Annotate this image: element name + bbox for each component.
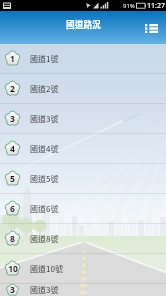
staticText: 5	[10, 173, 15, 185]
staticText: 國道3號	[30, 113, 59, 125]
staticText: 國道8號	[30, 233, 59, 245]
button[interactable]: 8	[0, 224, 166, 253]
button[interactable]: 3	[0, 284, 166, 296]
staticText: 國道1號	[30, 53, 59, 65]
button[interactable]: 4	[0, 134, 166, 163]
staticText: 6	[10, 203, 15, 215]
button[interactable]: 10	[0, 254, 166, 283]
staticText: 國道10號	[30, 263, 63, 275]
staticText: 3	[10, 113, 15, 125]
button[interactable]: 6	[0, 194, 166, 223]
staticText: 8	[10, 233, 15, 245]
button[interactable]: 3	[0, 104, 166, 133]
staticText: 3	[10, 284, 15, 296]
staticText: 1	[10, 53, 15, 65]
staticText: 91%	[123, 2, 135, 10]
staticText: 國道6號	[30, 203, 59, 215]
button[interactable]: Menu	[141, 18, 161, 38]
button[interactable]: 1	[0, 44, 166, 73]
staticText: 4	[10, 143, 15, 155]
staticText: 國道2號	[30, 83, 59, 95]
staticText: 國道5號	[30, 173, 59, 185]
staticText: 國道3號	[30, 284, 59, 296]
staticText: 國道4號	[30, 143, 59, 155]
button[interactable]: 2	[0, 74, 166, 103]
staticText: 10	[8, 263, 18, 275]
button[interactable]: 5	[0, 164, 166, 193]
staticText: 11:27	[147, 1, 165, 11]
staticText: 2	[10, 83, 15, 95]
staticText: 國道路況	[66, 18, 101, 31]
